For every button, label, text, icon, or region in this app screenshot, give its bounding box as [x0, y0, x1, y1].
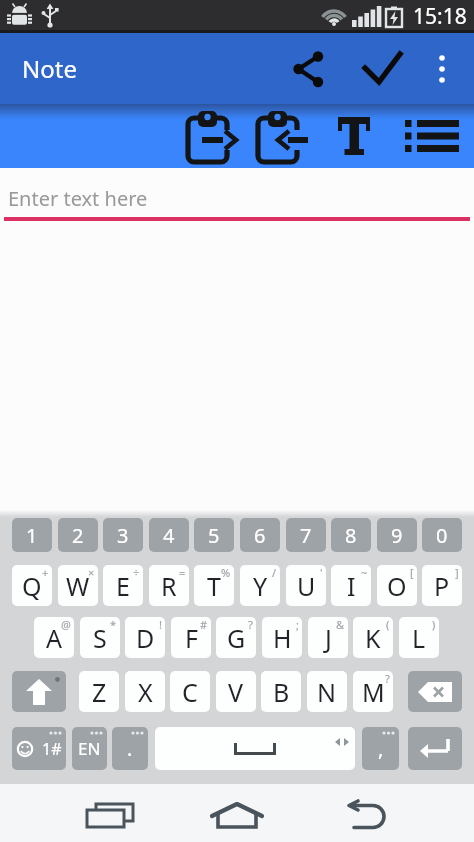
- button[interactable]: .: [112, 727, 148, 770]
- button[interactable]: 5: [194, 518, 234, 552]
- staticText: #: [200, 617, 208, 632]
- staticText: %: [221, 565, 231, 580]
- button[interactable]: 3: [103, 518, 143, 552]
- staticText: ): [432, 617, 436, 632]
- button[interactable]: [326, 104, 382, 168]
- button[interactable]: A: [34, 617, 74, 658]
- button[interactable]: [408, 671, 462, 712]
- button[interactable]: [155, 727, 355, 770]
- button[interactable]: [408, 727, 462, 770]
- staticText: /: [272, 565, 277, 580]
- button[interactable]: B: [261, 671, 301, 712]
- button[interactable]: U: [286, 565, 326, 606]
- button[interactable]: O: [377, 565, 417, 606]
- button[interactable]: 9: [377, 518, 417, 552]
- button[interactable]: T: [194, 565, 234, 606]
- button[interactable]: 0: [422, 518, 462, 552]
- staticText: Y: [253, 569, 268, 603]
- button[interactable]: [337, 798, 393, 834]
- button[interactable]: 7: [286, 518, 326, 552]
- button[interactable]: M: [353, 671, 393, 712]
- staticText: 15:18: [413, 2, 467, 31]
- staticText: C: [182, 675, 198, 709]
- staticText: Note: [22, 52, 77, 85]
- button[interactable]: G: [216, 617, 256, 658]
- staticText: Enter text here: [8, 185, 148, 212]
- button[interactable]: [396, 104, 468, 168]
- staticText: 1: [26, 522, 38, 549]
- button[interactable]: V: [216, 671, 256, 712]
- button[interactable]: L: [399, 617, 439, 658]
- staticText: ,: [378, 735, 384, 762]
- staticText: ;: [296, 617, 299, 632]
- button[interactable]: Z: [79, 671, 119, 712]
- staticText: N: [317, 675, 337, 709]
- button[interactable]: I: [331, 565, 371, 606]
- staticText: @: [61, 617, 71, 632]
- staticText: A: [46, 621, 62, 655]
- button[interactable]: [209, 798, 265, 834]
- button[interactable]: ,: [362, 727, 399, 770]
- button[interactable]: E: [103, 565, 143, 606]
- button[interactable]: [12, 671, 66, 712]
- button[interactable]: 1#: [12, 727, 66, 770]
- button[interactable]: D: [125, 617, 165, 658]
- staticText: ]: [455, 565, 459, 580]
- button[interactable]: 6: [240, 518, 280, 552]
- staticText: ÷: [133, 565, 140, 580]
- button[interactable]: [354, 33, 410, 104]
- staticText: 6: [254, 522, 266, 549]
- button[interactable]: [281, 33, 335, 104]
- staticText: (: [386, 617, 390, 632]
- staticText: 0: [436, 522, 448, 549]
- staticText: .: [127, 735, 133, 762]
- button[interactable]: [246, 104, 312, 168]
- button[interactable]: W: [58, 565, 98, 606]
- staticText: Z: [92, 675, 107, 709]
- staticText: ?: [385, 671, 390, 686]
- staticText: 5: [208, 522, 220, 549]
- staticText: ×: [88, 565, 95, 580]
- button[interactable]: 2: [58, 518, 98, 552]
- staticText: &: [336, 617, 345, 632]
- staticText: ~: [361, 565, 368, 580]
- button[interactable]: Q: [12, 565, 52, 606]
- staticText: 4: [163, 522, 175, 549]
- button[interactable]: K: [353, 617, 393, 658]
- button[interactable]: X: [125, 671, 165, 712]
- button[interactable]: EN: [72, 727, 107, 770]
- button[interactable]: 8: [331, 518, 371, 552]
- staticText: J: [325, 621, 332, 655]
- button[interactable]: J: [308, 617, 348, 658]
- staticText: 1#: [42, 738, 62, 760]
- button[interactable]: [176, 104, 242, 168]
- staticText: S: [93, 621, 107, 655]
- button[interactable]: 1: [12, 518, 52, 552]
- button[interactable]: Y: [240, 565, 280, 606]
- button[interactable]: C: [170, 671, 210, 712]
- staticText: G: [227, 621, 246, 655]
- staticText: L: [412, 621, 426, 655]
- staticText: D: [136, 621, 155, 655]
- staticText: ?: [248, 617, 253, 632]
- staticText: E: [116, 569, 130, 603]
- staticText: U: [297, 569, 316, 603]
- staticText: 7: [300, 522, 312, 549]
- button[interactable]: P: [422, 565, 462, 606]
- staticText: 3: [117, 522, 129, 549]
- staticText: K: [365, 621, 381, 655]
- button[interactable]: S: [80, 617, 120, 658]
- button[interactable]: N: [307, 671, 347, 712]
- button[interactable]: R: [149, 565, 189, 606]
- button[interactable]: 4: [149, 518, 189, 552]
- staticText: X: [138, 675, 153, 709]
- button[interactable]: [425, 33, 459, 104]
- staticText: T: [207, 569, 221, 603]
- button[interactable]: H: [262, 617, 302, 658]
- button[interactable]: F: [171, 617, 211, 658]
- staticText: Q: [22, 569, 42, 603]
- staticText: V: [228, 675, 244, 709]
- staticText: =: [179, 565, 186, 580]
- staticText: H: [273, 621, 292, 655]
- button[interactable]: [82, 798, 138, 834]
